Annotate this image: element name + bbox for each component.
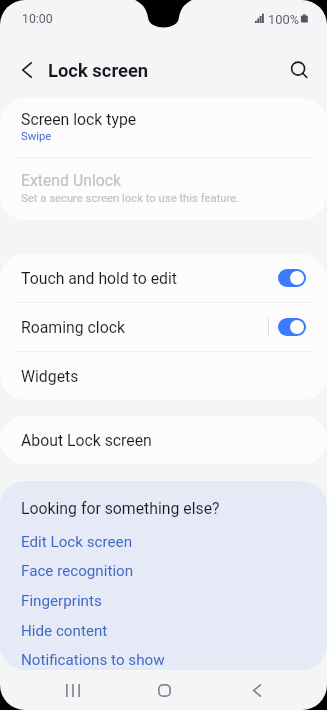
button[interactable]: Edit Lock screen: [0, 527, 327, 557]
button[interactable]: Recent apps: [50, 675, 95, 705]
button[interactable]: Notifications to show: [0, 645, 327, 670]
staticText: Screen lock type: [21, 110, 137, 129]
staticText: Widgets: [21, 367, 79, 386]
staticText: Face recognition: [21, 562, 134, 580]
button[interactable]: Roaming clock: [0, 303, 327, 351]
staticText: 100%: [268, 12, 300, 27]
staticText: Swipe: [21, 130, 52, 143]
button[interactable]: Face recognition: [0, 556, 327, 586]
button[interactable]: Back: [234, 675, 279, 705]
staticText: 10:00: [22, 12, 53, 26]
button[interactable]: Touch and hold to edit: [0, 254, 327, 302]
button[interactable]: Extend Unlock: [0, 158, 327, 220]
staticText: Notifications to show: [21, 651, 165, 669]
staticText: Roaming clock: [21, 318, 125, 337]
staticText: Looking for something else?: [21, 499, 220, 518]
button[interactable]: About Lock screen: [0, 416, 327, 464]
button[interactable]: Widgets: [0, 352, 327, 400]
staticText: Lock screen: [48, 60, 149, 82]
button[interactable]: Screen lock type: [0, 98, 327, 157]
staticText: Fingerprints: [21, 592, 102, 610]
button[interactable]: Home: [142, 675, 187, 705]
button[interactable]: Search: [281, 52, 315, 86]
button[interactable]: Fingerprints: [0, 586, 327, 616]
button[interactable]: Hide content: [0, 616, 327, 646]
staticText: Touch and hold to edit: [21, 269, 178, 288]
staticText: Edit Lock screen: [21, 533, 133, 551]
staticText: Hide content: [21, 622, 108, 640]
button[interactable]: Navigate up: [9, 53, 44, 87]
staticText: About Lock screen: [21, 431, 152, 450]
staticText: Extend Unlock: [21, 171, 122, 190]
staticText: Set a secure screen lock to use this fea…: [21, 192, 240, 205]
